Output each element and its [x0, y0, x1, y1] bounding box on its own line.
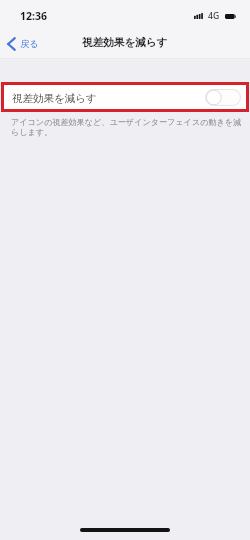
staticText: アイコンの視差効果など、ユーザインターフェイスの動きを減らします。 [11, 117, 249, 137]
staticText: 4G [208, 10, 220, 22]
staticText: 視差効果を減らす [82, 36, 168, 49]
staticText: 戻る [20, 38, 39, 49]
button[interactable]: 視差効果を減らす スイッチ [205, 89, 241, 106]
staticText: 12:36 [20, 9, 47, 23]
staticText: 視差効果を減らす [12, 92, 97, 105]
button[interactable]: 戻る [0, 35, 47, 53]
button[interactable]: 視差効果を減らす [1, 82, 249, 112]
